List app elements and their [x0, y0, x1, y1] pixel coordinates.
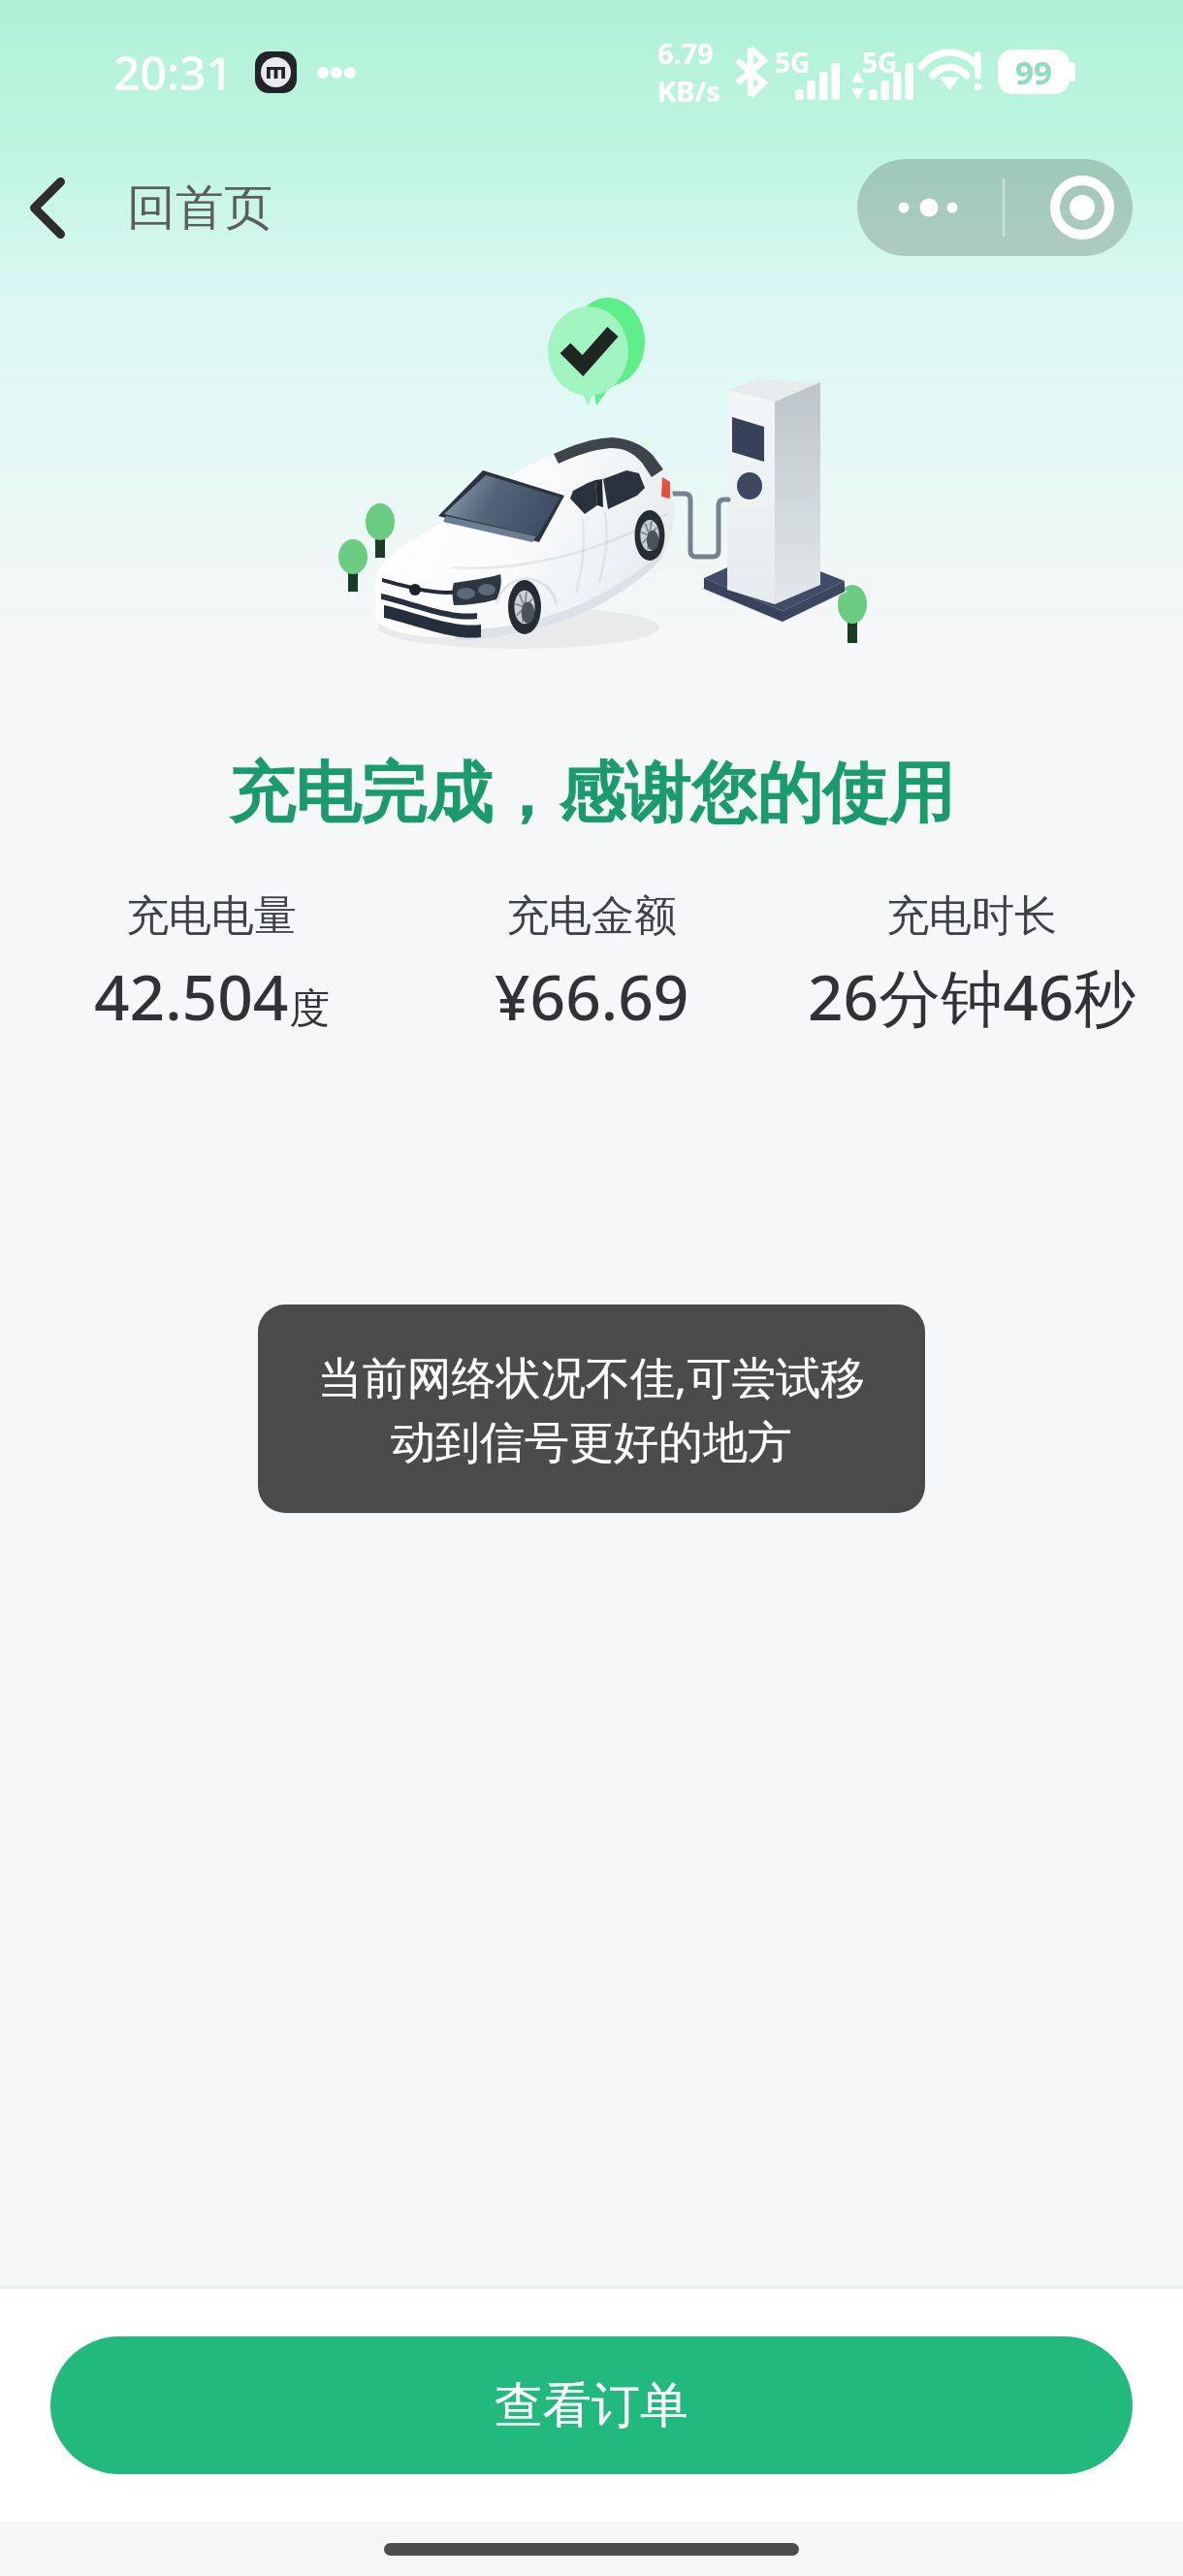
- staticText: ¥66.69: [495, 954, 689, 1039]
- staticText: 当前网络状况不佳,可尝试移 动到信号更好的地方: [258, 1346, 925, 1471]
- button[interactable]: 更多: [857, 159, 1133, 256]
- staticText: 查看订单: [495, 2375, 688, 2436]
- staticText: 充电电量: [126, 889, 297, 943]
- staticText: 充电时长: [886, 889, 1057, 943]
- staticText: KB/s: [657, 72, 721, 110]
- staticText: 20:31: [113, 41, 233, 104]
- staticText: 6.79: [657, 34, 714, 72]
- button[interactable]: 返回: [0, 160, 95, 255]
- staticText: 5G: [775, 44, 811, 80]
- staticText: 26分钟46秒: [808, 954, 1136, 1039]
- staticText: 5G: [862, 44, 898, 80]
- staticText: 度: [289, 983, 330, 1035]
- staticText: 42.504: [94, 954, 289, 1039]
- button[interactable]: 查看订单: [50, 2336, 1133, 2474]
- staticText: 99: [1015, 50, 1052, 94]
- staticText: 充电完成，感谢您的使用: [229, 753, 954, 836]
- staticText: 回首页: [127, 177, 272, 239]
- staticText: 充电金额: [506, 889, 677, 943]
